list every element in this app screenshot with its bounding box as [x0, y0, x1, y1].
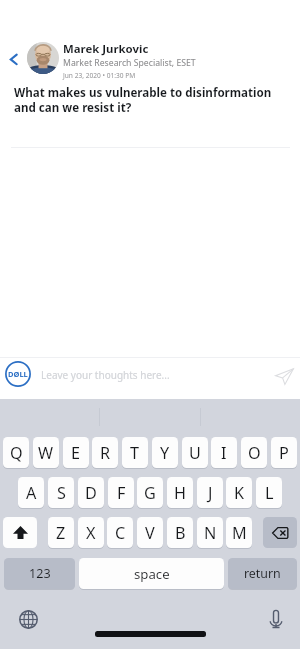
button[interactable]: Shift [3, 517, 37, 548]
button[interactable]: A [18, 477, 44, 508]
staticText: H [174, 482, 186, 504]
button[interactable]: Dell [5, 361, 31, 387]
button[interactable]: M [226, 517, 252, 548]
staticText: return [244, 565, 281, 582]
button[interactable]: W [33, 437, 59, 468]
button[interactable]: space [79, 558, 224, 589]
staticText: A [26, 482, 37, 504]
button[interactable]: G [137, 477, 163, 508]
button[interactable]: N [197, 517, 223, 548]
staticText: W [38, 442, 54, 464]
button[interactable]: E [63, 437, 89, 468]
button[interactable]: Q [3, 437, 29, 468]
button[interactable]: U [182, 437, 208, 468]
staticText: O [248, 442, 261, 464]
staticText: What makes us vulnerable to disinformati… [14, 85, 276, 116]
staticText: F [117, 482, 126, 504]
staticText: T [130, 442, 140, 464]
staticText: Marek Jurkovic [63, 41, 149, 57]
button[interactable]: D [78, 477, 104, 508]
button[interactable]: P [271, 437, 297, 468]
button[interactable]: F [108, 477, 134, 508]
staticText: N [204, 522, 217, 544]
staticText: Market Research Specialist, ESET [63, 57, 196, 69]
button[interactable]: J [197, 477, 223, 508]
button[interactable]: X [78, 517, 104, 548]
button[interactable]: return [228, 558, 297, 589]
button[interactable]: Voice input [268, 610, 284, 629]
button[interactable]: O [241, 437, 267, 468]
button[interactable]: I [211, 437, 237, 468]
button[interactable]: Backspace [263, 517, 297, 548]
staticText: D [85, 482, 97, 504]
button[interactable]: Change keyboard language [19, 610, 38, 629]
staticText: DØLL [8, 369, 28, 379]
staticText: U [189, 442, 201, 464]
button[interactable]: K [226, 477, 252, 508]
staticText: space [134, 565, 170, 583]
staticText: Jun 23, 2020 • 01:30 PM [63, 71, 136, 80]
button[interactable]: H [167, 477, 193, 508]
staticText: C [115, 522, 126, 544]
staticText: Z [56, 522, 66, 544]
staticText: G [144, 482, 156, 504]
button[interactable]: 123 [4, 558, 75, 589]
button[interactable]: V [137, 517, 163, 548]
staticText: Q [10, 442, 23, 464]
staticText: X [86, 522, 96, 544]
staticText: E [71, 442, 81, 464]
button[interactable]: Z [48, 517, 74, 548]
button[interactable]: S [48, 477, 74, 508]
button[interactable]: T [122, 437, 148, 468]
button[interactable]: B [167, 517, 193, 548]
staticText: 123 [29, 565, 51, 582]
staticText: B [175, 522, 186, 544]
staticText: Y [160, 442, 170, 464]
staticText: K [234, 482, 245, 504]
staticText: Leave your thoughts here... [41, 368, 170, 382]
staticText: I [221, 442, 227, 464]
button[interactable]: L [256, 477, 282, 508]
staticText: R [100, 442, 111, 464]
staticText: J [208, 482, 213, 504]
button[interactable]: Send [275, 368, 294, 385]
staticText: V [145, 522, 155, 544]
button[interactable]: C [107, 517, 133, 548]
staticText: S [57, 482, 66, 504]
button[interactable]: Y [152, 437, 178, 468]
staticText: P [279, 442, 289, 464]
button[interactable]: Back [1, 46, 27, 72]
button[interactable]: R [92, 437, 118, 468]
staticText: L [265, 482, 274, 504]
staticText: M [232, 522, 247, 544]
